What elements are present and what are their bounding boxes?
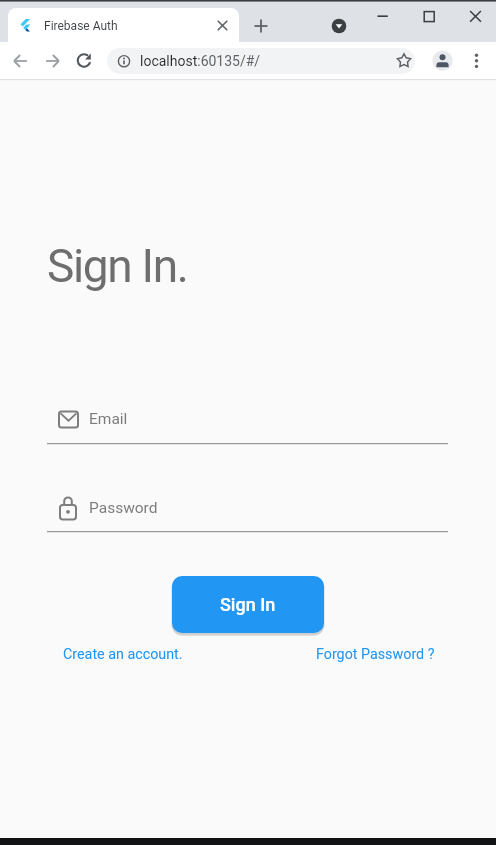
- button[interactable]: [331, 18, 347, 34]
- button[interactable]: [428, 46, 457, 75]
- button[interactable]: Create an account.: [63, 646, 183, 663]
- staticText: Email: [89, 410, 128, 428]
- staticText: localhost:60135/#/: [140, 53, 261, 69]
- button[interactable]: [412, 4, 446, 29]
- button[interactable]: [38, 46, 67, 75]
- button[interactable]: [462, 46, 491, 75]
- button[interactable]: Sign In: [172, 576, 324, 633]
- staticText: Forgot Password ?: [316, 646, 435, 663]
- button[interactable]: [459, 4, 493, 29]
- staticText: Password: [89, 499, 158, 517]
- button[interactable]: Email: [47, 403, 448, 443]
- button[interactable]: Forgot Password ?: [316, 646, 435, 663]
- button[interactable]: [250, 15, 272, 37]
- button[interactable]: [6, 46, 35, 75]
- button[interactable]: [107, 48, 415, 74]
- staticText: Sign In.: [47, 239, 188, 293]
- button[interactable]: [366, 4, 400, 29]
- button[interactable]: Password: [47, 492, 448, 531]
- button[interactable]: [69, 46, 98, 75]
- button[interactable]: [212, 15, 233, 36]
- staticText: Firebase Auth: [44, 19, 118, 33]
- staticText: Sign In: [220, 594, 276, 615]
- button[interactable]: [390, 46, 419, 75]
- button[interactable]: [8, 8, 239, 42]
- staticText: Create an account.: [63, 646, 183, 663]
